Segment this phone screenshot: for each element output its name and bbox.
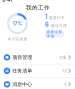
staticText: 9:41 xyxy=(2,0,12,3)
staticText: 消息中心 xyxy=(12,81,32,87)
button[interactable]: 查看全部详情 xyxy=(45,31,64,37)
staticText: 项目管理 xyxy=(12,54,32,60)
staticText: 任务清单 xyxy=(12,68,32,74)
staticText: 1 xyxy=(45,13,47,20)
staticText: 5 xyxy=(64,82,66,87)
staticText: 项待办理 xyxy=(51,23,67,28)
button[interactable]: 任务清单 xyxy=(0,64,75,78)
staticText: 3 项 xyxy=(59,55,66,60)
staticText: 12 xyxy=(62,68,66,73)
staticText: 本月完成度 xyxy=(7,37,27,41)
button[interactable]: 消息中心 xyxy=(0,78,75,89)
staticText: 查看全部详情 xyxy=(46,30,62,39)
button[interactable]: 项目管理 xyxy=(0,51,75,64)
staticText: 17% xyxy=(12,21,22,26)
staticText: 我的工作 xyxy=(26,4,50,11)
staticText: 6 xyxy=(45,21,49,28)
staticText: 项进行中 xyxy=(49,15,65,20)
